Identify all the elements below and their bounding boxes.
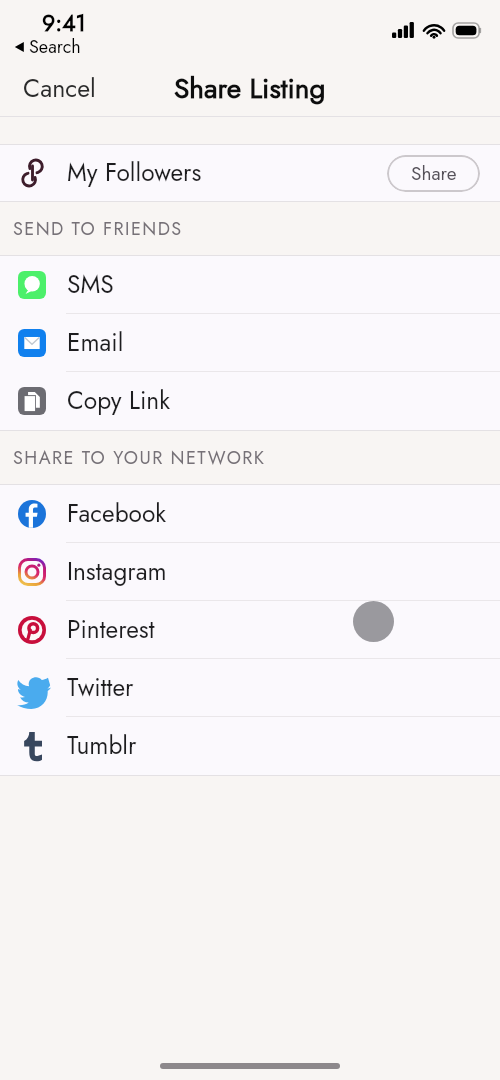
button[interactable]: Copy Link [0,372,500,430]
staticText: My Followers [67,155,202,190]
staticText: Instagram [67,554,167,589]
button[interactable]: Share [387,155,480,192]
staticText: 9:41 [42,6,86,39]
button[interactable]: My Followers [0,145,500,201]
staticText: Facebook [67,496,167,531]
button[interactable]: Twitter [0,659,500,717]
staticText: Search [29,34,81,60]
staticText: SMS [67,267,114,302]
button[interactable]: Pinterest [0,601,500,659]
staticText: Cancel [23,70,96,106]
button[interactable]: Cancel [0,60,150,116]
button[interactable]: Instagram [0,543,500,601]
staticText: Email [67,325,124,360]
staticText: SEND TO FRIENDS [13,216,183,242]
staticText: Copy Link [67,383,170,418]
staticText: Share [411,160,457,187]
button[interactable]: Facebook [0,485,500,543]
staticText: Pinterest [67,612,155,647]
button[interactable]: Tumblr [0,717,500,775]
button[interactable]: SMS [0,256,500,314]
staticText: Twitter [67,670,134,705]
staticText: SHARE TO YOUR NETWORK [13,445,266,471]
staticText: Tumblr [67,728,137,763]
staticText: Share Listing [174,68,326,108]
button[interactable]: Email [0,314,500,372]
